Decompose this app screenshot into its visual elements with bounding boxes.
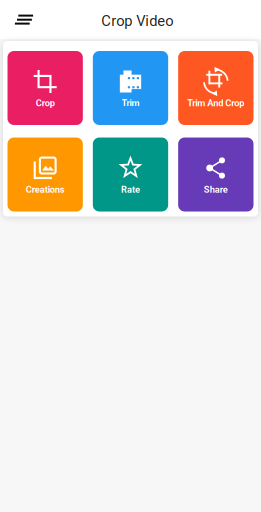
button[interactable]: Share bbox=[178, 137, 253, 211]
staticText: Trim bbox=[121, 97, 139, 108]
staticText: Share bbox=[204, 184, 228, 195]
button[interactable]: Menu bbox=[0, 3, 45, 36]
staticText: Trim And Crop bbox=[187, 97, 244, 108]
button[interactable]: Crop bbox=[7, 51, 83, 125]
button[interactable]: Trim bbox=[93, 51, 168, 125]
button[interactable]: Rate bbox=[93, 137, 168, 211]
staticText: Rate bbox=[121, 184, 140, 195]
staticText: Crop Video bbox=[101, 12, 173, 30]
staticText: Crop bbox=[36, 97, 55, 108]
button[interactable]: Trim And Crop bbox=[178, 51, 253, 125]
button[interactable]: Creations bbox=[7, 137, 83, 211]
staticText: Creations bbox=[26, 184, 65, 195]
